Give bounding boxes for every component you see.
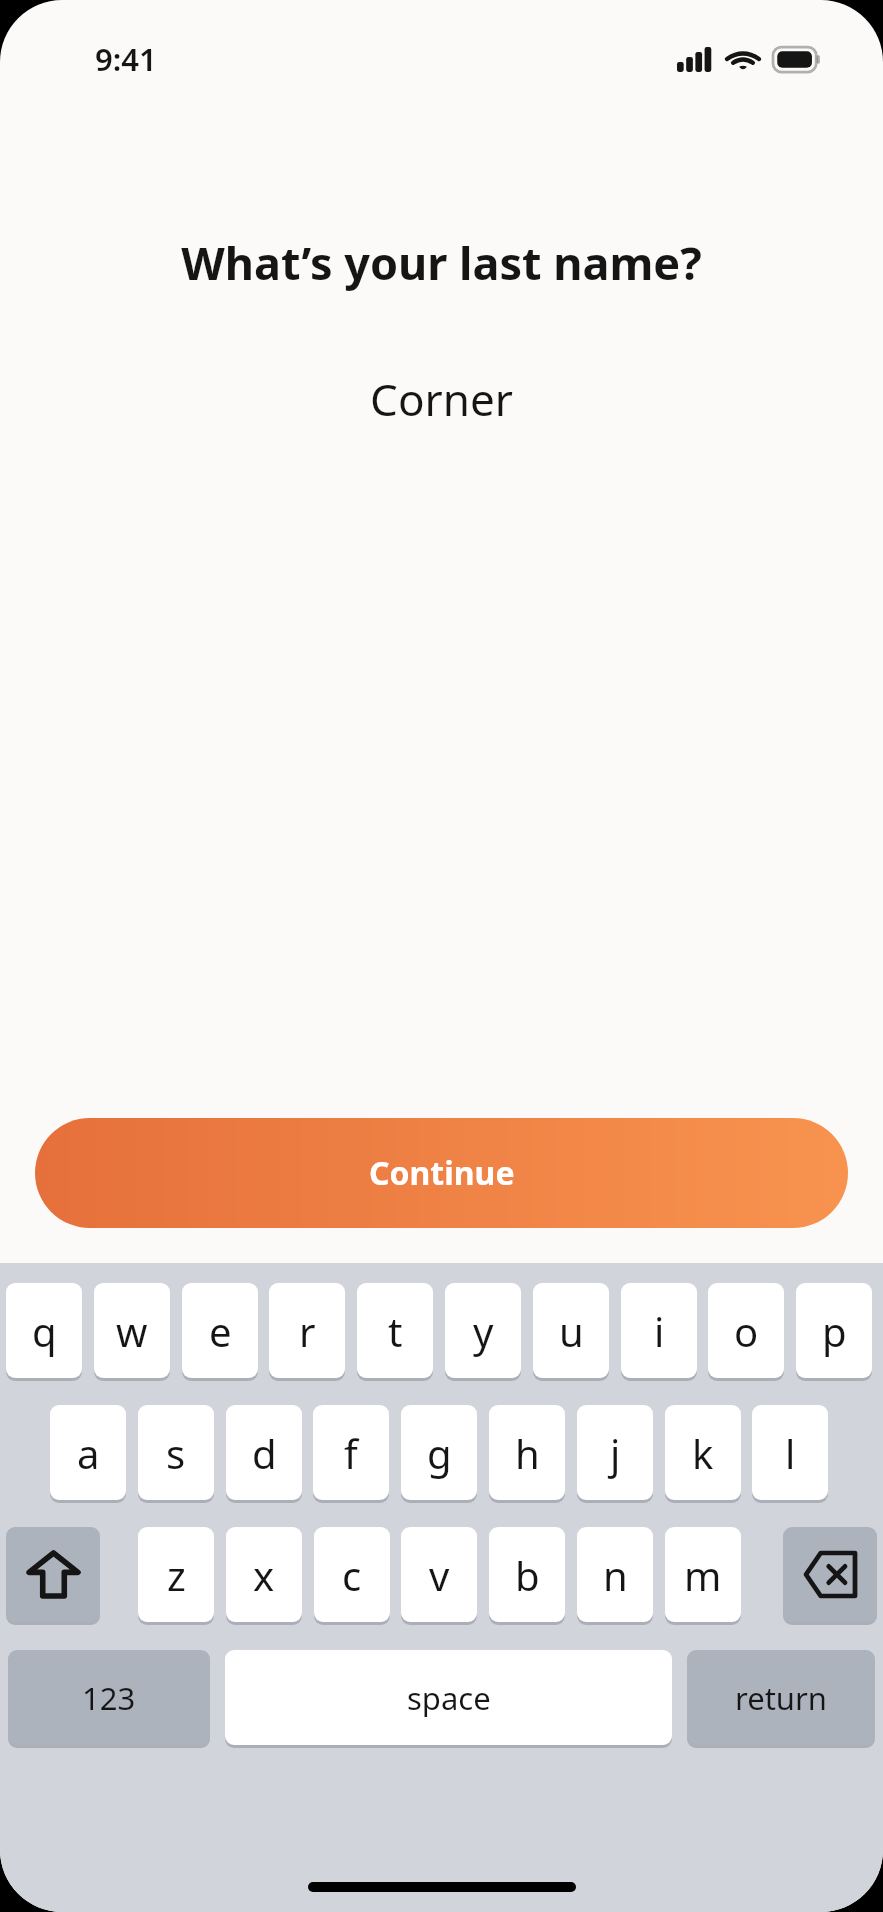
staticText: u bbox=[559, 1304, 584, 1358]
staticText: c bbox=[342, 1548, 362, 1602]
button[interactable]: o bbox=[708, 1283, 784, 1378]
staticText: Continue bbox=[369, 1151, 515, 1195]
button[interactable]: s bbox=[138, 1405, 214, 1500]
staticText: n bbox=[603, 1548, 628, 1602]
staticText: d bbox=[252, 1426, 277, 1480]
button[interactable]: r bbox=[269, 1283, 345, 1378]
staticText: l bbox=[785, 1426, 796, 1480]
button[interactable]: f bbox=[313, 1405, 389, 1500]
staticText: g bbox=[427, 1426, 452, 1480]
button[interactable]: g bbox=[401, 1405, 477, 1500]
staticText: v bbox=[429, 1548, 450, 1602]
staticText: return bbox=[735, 1677, 827, 1719]
button[interactable]: x bbox=[226, 1527, 302, 1622]
staticText: b bbox=[515, 1548, 540, 1602]
button[interactable]: n bbox=[577, 1527, 653, 1622]
staticText: f bbox=[344, 1426, 358, 1480]
button[interactable]: m bbox=[665, 1527, 741, 1622]
button[interactable]: 123 bbox=[8, 1650, 210, 1745]
staticText: h bbox=[515, 1426, 540, 1480]
staticText: r bbox=[299, 1304, 316, 1358]
button[interactable]: Backspace bbox=[783, 1527, 877, 1622]
staticText: a bbox=[77, 1426, 100, 1480]
button[interactable]: Shift bbox=[6, 1527, 100, 1622]
button[interactable]: z bbox=[138, 1527, 214, 1622]
staticText: m bbox=[684, 1548, 722, 1602]
staticText: p bbox=[822, 1304, 847, 1358]
button[interactable]: Continue bbox=[35, 1118, 848, 1228]
button[interactable]: h bbox=[489, 1405, 565, 1500]
button[interactable]: i bbox=[621, 1283, 697, 1378]
button[interactable]: a bbox=[50, 1405, 126, 1500]
staticText: q bbox=[32, 1304, 57, 1358]
button[interactable]: u bbox=[533, 1283, 609, 1378]
staticText: w bbox=[116, 1304, 148, 1358]
staticText: space bbox=[407, 1677, 491, 1719]
staticText: 9:41 bbox=[95, 38, 157, 80]
button[interactable]: q bbox=[6, 1283, 82, 1378]
staticText: z bbox=[167, 1548, 186, 1602]
button[interactable]: l bbox=[752, 1405, 828, 1500]
staticText: j bbox=[610, 1426, 621, 1480]
button[interactable]: y bbox=[445, 1283, 521, 1378]
button[interactable]: w bbox=[94, 1283, 170, 1378]
staticText: Corner bbox=[40, 369, 843, 429]
button[interactable]: j bbox=[577, 1405, 653, 1500]
staticText: x bbox=[253, 1548, 275, 1602]
button[interactable]: space bbox=[225, 1650, 672, 1745]
button[interactable]: t bbox=[357, 1283, 433, 1378]
button[interactable]: p bbox=[796, 1283, 872, 1378]
button[interactable]: return bbox=[687, 1650, 875, 1745]
staticText: t bbox=[388, 1304, 403, 1358]
button[interactable]: v bbox=[401, 1527, 477, 1622]
staticText: e bbox=[209, 1304, 232, 1358]
button[interactable]: k bbox=[665, 1405, 741, 1500]
staticText: i bbox=[654, 1304, 665, 1358]
staticText: o bbox=[734, 1304, 759, 1358]
staticText: What’s your last name? bbox=[40, 232, 843, 293]
button[interactable]: e bbox=[182, 1283, 258, 1378]
button[interactable]: b bbox=[489, 1527, 565, 1622]
staticText: 123 bbox=[82, 1677, 136, 1719]
button[interactable]: d bbox=[226, 1405, 302, 1500]
staticText: s bbox=[166, 1426, 186, 1480]
button[interactable]: c bbox=[314, 1527, 390, 1622]
staticText: y bbox=[473, 1304, 494, 1358]
staticText: k bbox=[692, 1426, 714, 1480]
